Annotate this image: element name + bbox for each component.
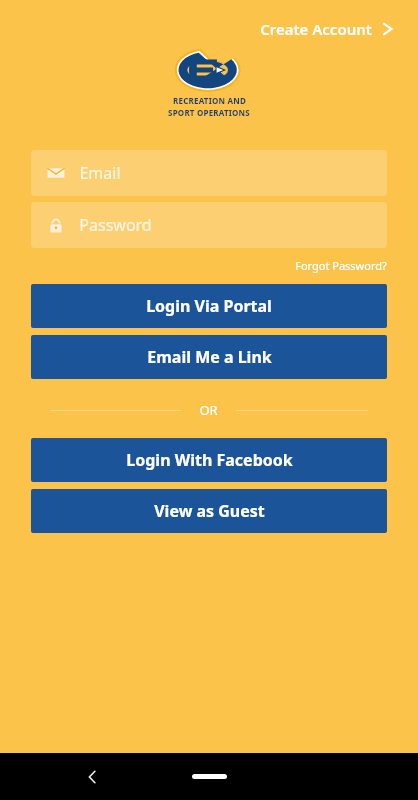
staticText: SPORT OPERATIONS (168, 107, 250, 118)
staticText: RECREATION AND (173, 95, 246, 106)
staticText: Password (79, 214, 152, 236)
button[interactable]: Back (78, 763, 106, 791)
staticText: Login With Facebook (126, 449, 293, 471)
staticText: Email Me a Link (147, 346, 272, 368)
staticText: Forgot Password? (295, 258, 387, 273)
button[interactable]: Forgot Password? (293, 256, 389, 275)
button[interactable]: Home (186, 766, 233, 787)
staticText: Login Via Portal (146, 295, 272, 317)
staticText: OR (199, 401, 218, 419)
staticText: View as Guest (154, 500, 265, 522)
button[interactable]: Login Via Portal (31, 284, 387, 328)
button[interactable]: View as Guest (31, 489, 387, 533)
button[interactable]: Password (31, 202, 387, 248)
button[interactable]: Login With Facebook (31, 438, 387, 482)
button[interactable]: Email Me a Link (31, 335, 387, 379)
staticText: Email (79, 162, 121, 184)
button[interactable]: Email (31, 150, 387, 196)
staticText: Create Account (260, 19, 372, 39)
button[interactable]: Create Account (256, 16, 398, 42)
